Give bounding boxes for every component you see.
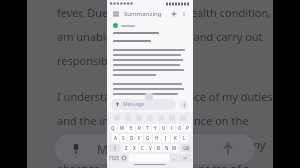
staticText: K (174, 135, 177, 141)
staticText: ⏎ (183, 156, 187, 161)
button[interactable]: Send (179, 100, 189, 110)
button[interactable]: . (170, 154, 178, 162)
staticText: Z (125, 145, 128, 151)
staticText: V (149, 145, 152, 151)
button[interactable]: W (118, 124, 126, 132)
staticText: T (146, 125, 149, 131)
button[interactable]: K (171, 134, 179, 142)
button[interactable]: New chat (169, 9, 179, 19)
button[interactable]: D (128, 134, 135, 142)
staticText: L (183, 135, 186, 141)
button[interactable]: J (162, 134, 170, 142)
button[interactable]: ⇧ (109, 144, 120, 152)
button[interactable]: ⌫ (181, 144, 191, 152)
staticText: ?123 (109, 155, 119, 161)
staticText: J (165, 135, 167, 141)
staticText: F (138, 135, 141, 141)
button[interactable]: X (131, 144, 138, 152)
button[interactable]: F (136, 134, 143, 142)
staticText: N (165, 145, 169, 151)
staticText: am unable to attend work and carry out m… (57, 29, 273, 44)
button[interactable]: C (139, 144, 146, 152)
button[interactable]: ?123 (109, 154, 119, 162)
button[interactable]: Z (123, 144, 130, 152)
button[interactable]: Y (152, 124, 159, 132)
button[interactable]: M (171, 144, 178, 152)
button[interactable]: Summarizing user's re... (124, 10, 169, 18)
staticText: H (155, 135, 159, 141)
button[interactable]: E (127, 124, 135, 132)
staticText: fever. Due to my current health conditio… (57, 5, 273, 20)
button[interactable]: ⏎ (179, 154, 191, 162)
button[interactable]: G (144, 134, 152, 142)
staticText: Y (154, 125, 157, 131)
button[interactable]: H (153, 134, 161, 142)
button[interactable]: P (184, 124, 191, 132)
button[interactable]: I (168, 124, 175, 132)
staticText: Message (123, 101, 144, 108)
button[interactable]: L (180, 134, 188, 142)
staticText: responsibilities effectively. (57, 53, 193, 68)
staticText: To ensure a smooth workflow during my (57, 137, 266, 152)
button[interactable]: O (176, 124, 183, 132)
staticText: Messa (97, 141, 133, 157)
staticText: P (186, 125, 189, 131)
staticText: M (172, 145, 177, 151)
button[interactable]: T (144, 124, 151, 132)
staticText: B (157, 145, 160, 151)
staticText: D (130, 135, 134, 141)
button[interactable]: More options (179, 9, 189, 19)
button[interactable]: U (160, 124, 167, 132)
staticText: U (162, 125, 166, 131)
button[interactable]: V (147, 144, 154, 152)
staticText: R (138, 125, 141, 131)
staticText: I (171, 125, 173, 131)
staticText: S (122, 135, 125, 141)
button[interactable]: A (112, 134, 119, 142)
button[interactable]: B (155, 144, 162, 152)
staticText: X (133, 145, 136, 151)
button[interactable]: Emoji (120, 154, 128, 162)
staticText: ⌫ (183, 146, 190, 151)
staticText: absence, I have shared the name of a (57, 161, 250, 168)
button[interactable]: Message (111, 99, 176, 110)
staticText: C (141, 145, 144, 151)
button[interactable]: Menu (111, 9, 121, 19)
staticText: E (130, 125, 133, 131)
button[interactable]: Q (109, 124, 117, 132)
staticText: I understand the importance of my duties (57, 89, 273, 104)
staticText: . (173, 155, 175, 161)
staticText: ⇧ (113, 146, 117, 151)
staticText: W (120, 125, 125, 131)
staticText: A (114, 135, 117, 141)
staticText: O (178, 125, 182, 131)
button[interactable]: N (163, 144, 170, 152)
button[interactable]: R (136, 124, 143, 132)
staticText: and the impact of my absence on the team… (57, 113, 273, 128)
staticText: G (146, 135, 150, 141)
button[interactable]: Text cursor (145, 93, 153, 100)
button[interactable]: S (120, 134, 127, 142)
staticText: Q (111, 125, 115, 131)
